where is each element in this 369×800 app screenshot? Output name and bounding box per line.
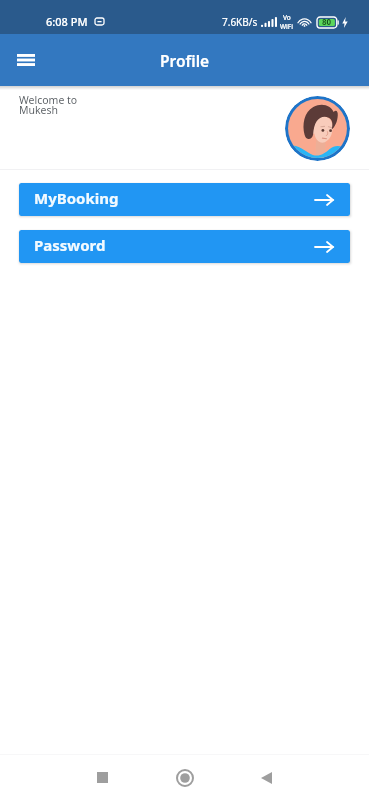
button[interactable]: Recents bbox=[80, 755, 125, 800]
staticText: Profile bbox=[160, 50, 210, 71]
button[interactable]: Home bbox=[162, 755, 207, 800]
staticText: Password bbox=[34, 235, 106, 255]
staticText: 7.6KB/s bbox=[222, 15, 258, 29]
button[interactable]: Menu bbox=[10, 44, 42, 76]
staticText: Vo bbox=[283, 13, 291, 22]
staticText: WiFi bbox=[280, 22, 294, 31]
button[interactable]: Password bbox=[19, 230, 350, 263]
staticText: 80 bbox=[322, 16, 332, 27]
staticText: Welcome to Mukesh bbox=[19, 93, 78, 117]
button[interactable]: Profile picture bbox=[285, 96, 350, 161]
staticText: 6:08 PM bbox=[46, 14, 88, 29]
button[interactable]: MyBooking bbox=[19, 183, 350, 216]
staticText: MyBooking bbox=[34, 188, 119, 208]
button[interactable]: Back bbox=[244, 755, 289, 800]
